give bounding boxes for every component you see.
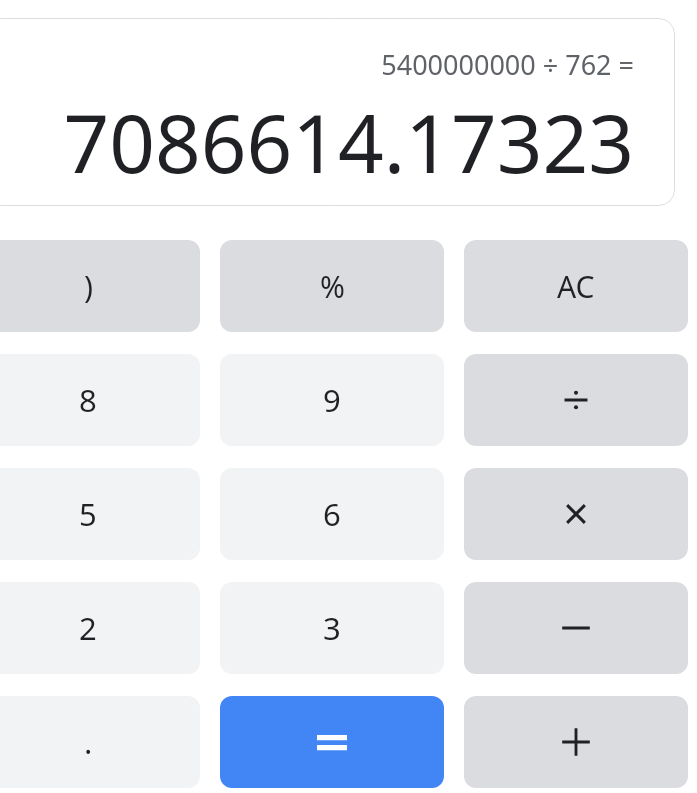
button[interactable]: Divide — [464, 354, 688, 446]
staticText: 5400000000 ÷ 762 = — [381, 46, 634, 83]
staticText: 7086614.17323 — [63, 87, 634, 188]
button[interactable]: 9 — [220, 354, 444, 446]
button[interactable]: 2 — [0, 582, 200, 674]
staticText: % — [320, 266, 345, 307]
button[interactable]: Equals — [220, 696, 444, 788]
staticText: 5 — [79, 493, 97, 535]
button[interactable]: Multiply — [464, 468, 688, 560]
button[interactable]: % — [220, 240, 444, 332]
button[interactable]: Plus — [464, 696, 688, 788]
staticText: ) — [84, 266, 93, 307]
staticText: 8 — [79, 379, 97, 421]
button[interactable]: 6 — [220, 468, 444, 560]
button[interactable]: ) — [0, 240, 200, 332]
staticText: 2 — [79, 607, 97, 649]
button[interactable]: 8 — [0, 354, 200, 446]
staticText: 3 — [323, 607, 341, 649]
button[interactable]: Minus — [464, 582, 688, 674]
staticText: . — [84, 721, 93, 763]
button[interactable]: . — [0, 696, 200, 788]
button[interactable]: 3 — [220, 582, 444, 674]
staticText: AC — [557, 266, 595, 307]
staticText: 6 — [323, 493, 341, 535]
button[interactable]: AC — [464, 240, 688, 332]
button[interactable]: 5 — [0, 468, 200, 560]
staticText: 9 — [323, 379, 341, 421]
